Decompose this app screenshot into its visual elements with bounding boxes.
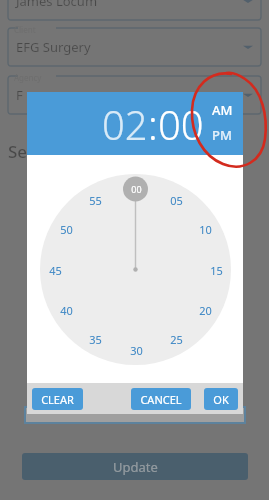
- staticText: 40: [60, 303, 73, 317]
- staticText: Agency: [14, 72, 42, 83]
- staticText: CANCEL: [140, 392, 182, 407]
- staticText: :: [148, 97, 158, 151]
- staticText: CLEAR: [41, 392, 74, 407]
- staticText: Update: [113, 458, 158, 476]
- staticText: Se: [8, 140, 28, 163]
- staticText: 25: [170, 332, 183, 346]
- staticText: 15: [210, 263, 223, 277]
- button[interactable]: Minute selector clock: [40, 174, 231, 365]
- staticText: Client: [14, 24, 36, 35]
- staticText: 10: [199, 222, 212, 236]
- staticText: 20: [199, 303, 212, 317]
- staticText: 55: [89, 193, 102, 207]
- staticText: 50: [60, 222, 73, 236]
- staticText: F: [16, 86, 243, 104]
- button[interactable]: AM: [212, 101, 233, 119]
- button[interactable]: CLEAR: [32, 388, 83, 410]
- staticText: 00: [131, 183, 142, 195]
- button[interactable]: PM: [212, 126, 232, 144]
- button[interactable]: Update: [22, 453, 248, 480]
- staticText: 35: [89, 332, 102, 346]
- staticText: 05: [170, 193, 183, 207]
- button[interactable]: 02: [102, 97, 148, 151]
- button[interactable]: 00: [158, 97, 204, 151]
- staticText: 45: [49, 263, 62, 277]
- button[interactable]: CANCEL: [131, 388, 191, 410]
- staticText: James Locum: [16, 0, 243, 10]
- staticText: 30: [130, 343, 143, 357]
- button[interactable]: OK: [204, 388, 238, 410]
- staticText: OK: [213, 392, 229, 407]
- staticText: EFG Surgery: [16, 38, 243, 56]
